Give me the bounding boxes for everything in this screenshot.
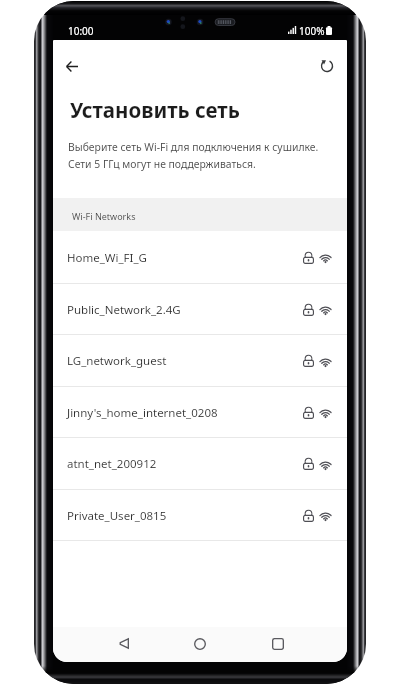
staticText: 10:00 (68, 24, 94, 38)
staticText: 100% (299, 24, 325, 38)
button[interactable]: Jinny's_home_internet_0208 (53, 387, 347, 438)
staticText: Установить сеть (70, 96, 240, 124)
button[interactable]: Home_Wi_FI_G (53, 231, 347, 284)
button[interactable]: atnt_net_200912 (53, 438, 347, 490)
staticText: Wi-Fi Networks (72, 210, 136, 222)
button[interactable]: LG_network_guest (53, 335, 347, 387)
staticText: LG_network_guest (67, 353, 303, 369)
button[interactable]: Recents (260, 626, 296, 661)
button[interactable]: Private_User_0815 (53, 490, 347, 541)
staticText: Jinny's_home_internet_0208 (67, 405, 303, 421)
button[interactable]: Refresh (308, 47, 346, 85)
staticText: Выберите сеть Wi-Fi для подключения к су… (68, 140, 319, 171)
staticText: atnt_net_200912 (67, 456, 303, 472)
staticText: Home_Wi_FI_G (67, 250, 303, 266)
button[interactable]: Back (105, 626, 141, 661)
button[interactable]: Back (53, 47, 91, 85)
button[interactable]: Public_Network_2.4G (53, 284, 347, 335)
button[interactable]: Home (182, 626, 218, 661)
staticText: Private_User_0815 (67, 508, 303, 524)
staticText: Public_Network_2.4G (67, 302, 303, 318)
